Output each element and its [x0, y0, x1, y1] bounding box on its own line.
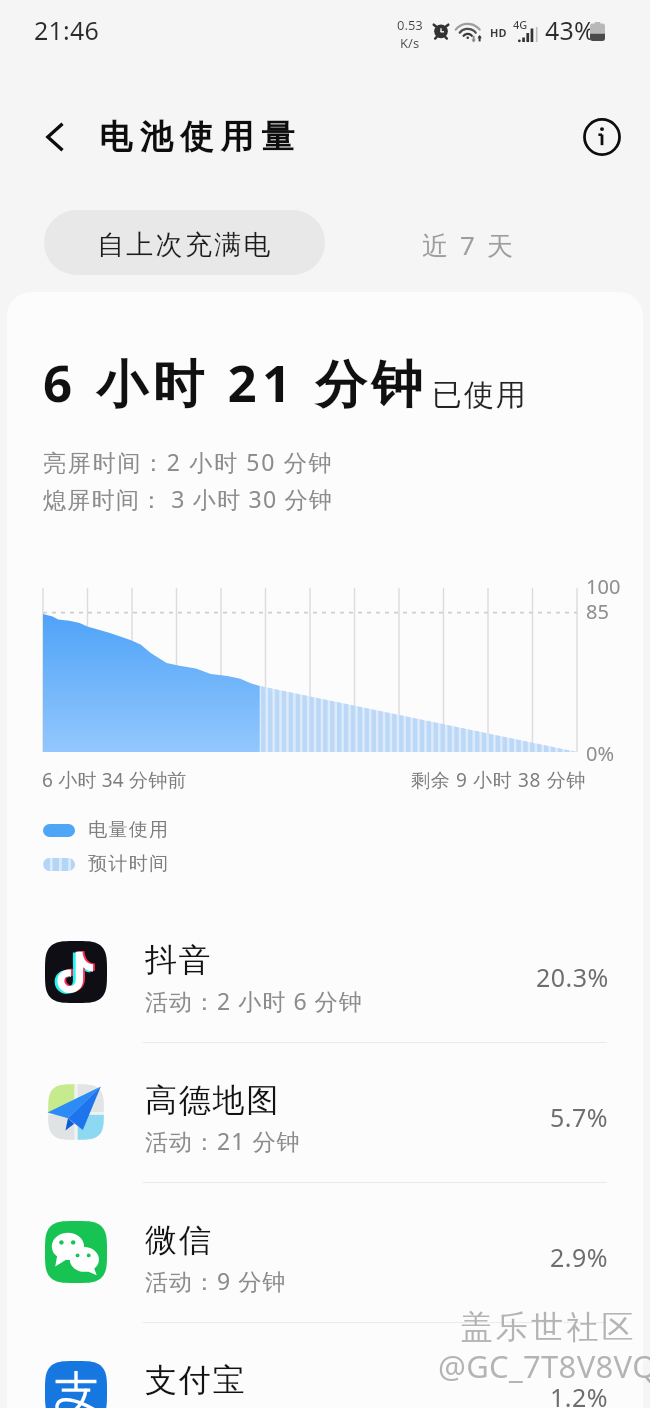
staticText: 支付宝 — [145, 1360, 247, 1400]
button[interactable]: 支付宝 — [0, 1322, 650, 1408]
staticText: 0.53 — [397, 16, 423, 34]
staticText: 抖音 — [145, 940, 213, 980]
button[interactable]: Information — [578, 113, 626, 161]
staticText: 高德地图 — [145, 1080, 281, 1120]
button[interactable]: 微信 — [0, 1182, 650, 1322]
staticText: 电池使用量 — [99, 116, 302, 158]
staticText: 剩余 9 小时 38 分钟 — [411, 767, 587, 793]
staticText: 20.3% — [536, 960, 609, 994]
staticText: 2.9% — [550, 1240, 609, 1274]
button[interactable]: 高德地图 — [0, 1042, 650, 1182]
staticText: 活动：21 分钟 — [145, 1125, 301, 1156]
staticText: 21:46 — [34, 13, 100, 47]
staticText: 电量使用 — [88, 818, 170, 842]
staticText: @GC_7T8V8VQ — [438, 1345, 650, 1387]
staticText: 6 小时 21 分钟 — [43, 347, 428, 417]
staticText: 活动：9 分钟 — [145, 1265, 287, 1296]
staticText: 亮屏时间：2 小时 50 分钟 — [43, 446, 334, 477]
staticText: @GC_7T8V8VQ — [440, 1347, 650, 1389]
staticText: 0% — [586, 740, 615, 767]
staticText: 1.2% — [550, 1380, 609, 1408]
staticText: 已使用 — [432, 376, 528, 414]
button[interactable]: Back — [34, 114, 80, 160]
staticText: 近 7 天 — [422, 227, 516, 263]
staticText: 43% — [545, 13, 596, 47]
staticText: 4G — [513, 17, 528, 32]
staticText: 微信 — [145, 1220, 213, 1260]
staticText: 熄屏时间： 3 小时 30 分钟 — [43, 483, 333, 514]
staticText: K/s — [400, 34, 420, 52]
staticText: 预计时间 — [88, 852, 170, 876]
button[interactable]: 抖音 — [0, 902, 650, 1042]
staticText: 100 — [586, 573, 621, 600]
staticText: 盖乐世社区 — [461, 1309, 637, 1349]
staticText: 5.7% — [550, 1100, 609, 1134]
staticText: HD — [490, 25, 507, 40]
button[interactable]: 近 7 天 — [392, 210, 542, 275]
button[interactable]: 自上次充满电 — [44, 210, 325, 275]
staticText: 活动：2 小时 6 分钟 — [145, 985, 363, 1016]
staticText: 盖乐世社区 — [459, 1307, 635, 1347]
staticText: 自上次充满电 — [97, 228, 273, 262]
staticText: 6 小时 34 分钟前 — [42, 767, 187, 793]
staticText: 85 — [586, 598, 609, 625]
